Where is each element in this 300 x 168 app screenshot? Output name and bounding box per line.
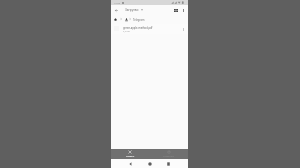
staticText: Загрузки bbox=[125, 8, 139, 12]
staticText: Telegram bbox=[133, 18, 145, 22]
staticText: 3,2 МБ bbox=[123, 30, 130, 33]
button[interactable]: Back bbox=[121, 159, 140, 168]
button[interactable]: Telegram bbox=[133, 15, 145, 24]
staticText: green-apple-method.pdf bbox=[123, 26, 153, 29]
button[interactable]: Recent apps bbox=[159, 159, 178, 168]
button[interactable]: Загрузки bbox=[125, 5, 143, 15]
button[interactable]: Item menu bbox=[181, 27, 185, 31]
button[interactable]: Back bbox=[113, 7, 120, 14]
staticText: Отмена bbox=[126, 155, 135, 158]
button[interactable]: Downloads bbox=[124, 17, 128, 21]
staticText: 13:05 bbox=[114, 1, 121, 4]
button[interactable]: Grid view bbox=[172, 7, 179, 14]
button[interactable]: Home bbox=[140, 159, 159, 168]
button[interactable]: Отмена bbox=[111, 149, 149, 159]
button[interactable]: Home bbox=[113, 17, 117, 21]
button[interactable]: green-apple-method.pdf bbox=[111, 24, 188, 34]
staticText: Сохранить bbox=[163, 155, 175, 158]
button[interactable]: More options bbox=[180, 7, 187, 14]
